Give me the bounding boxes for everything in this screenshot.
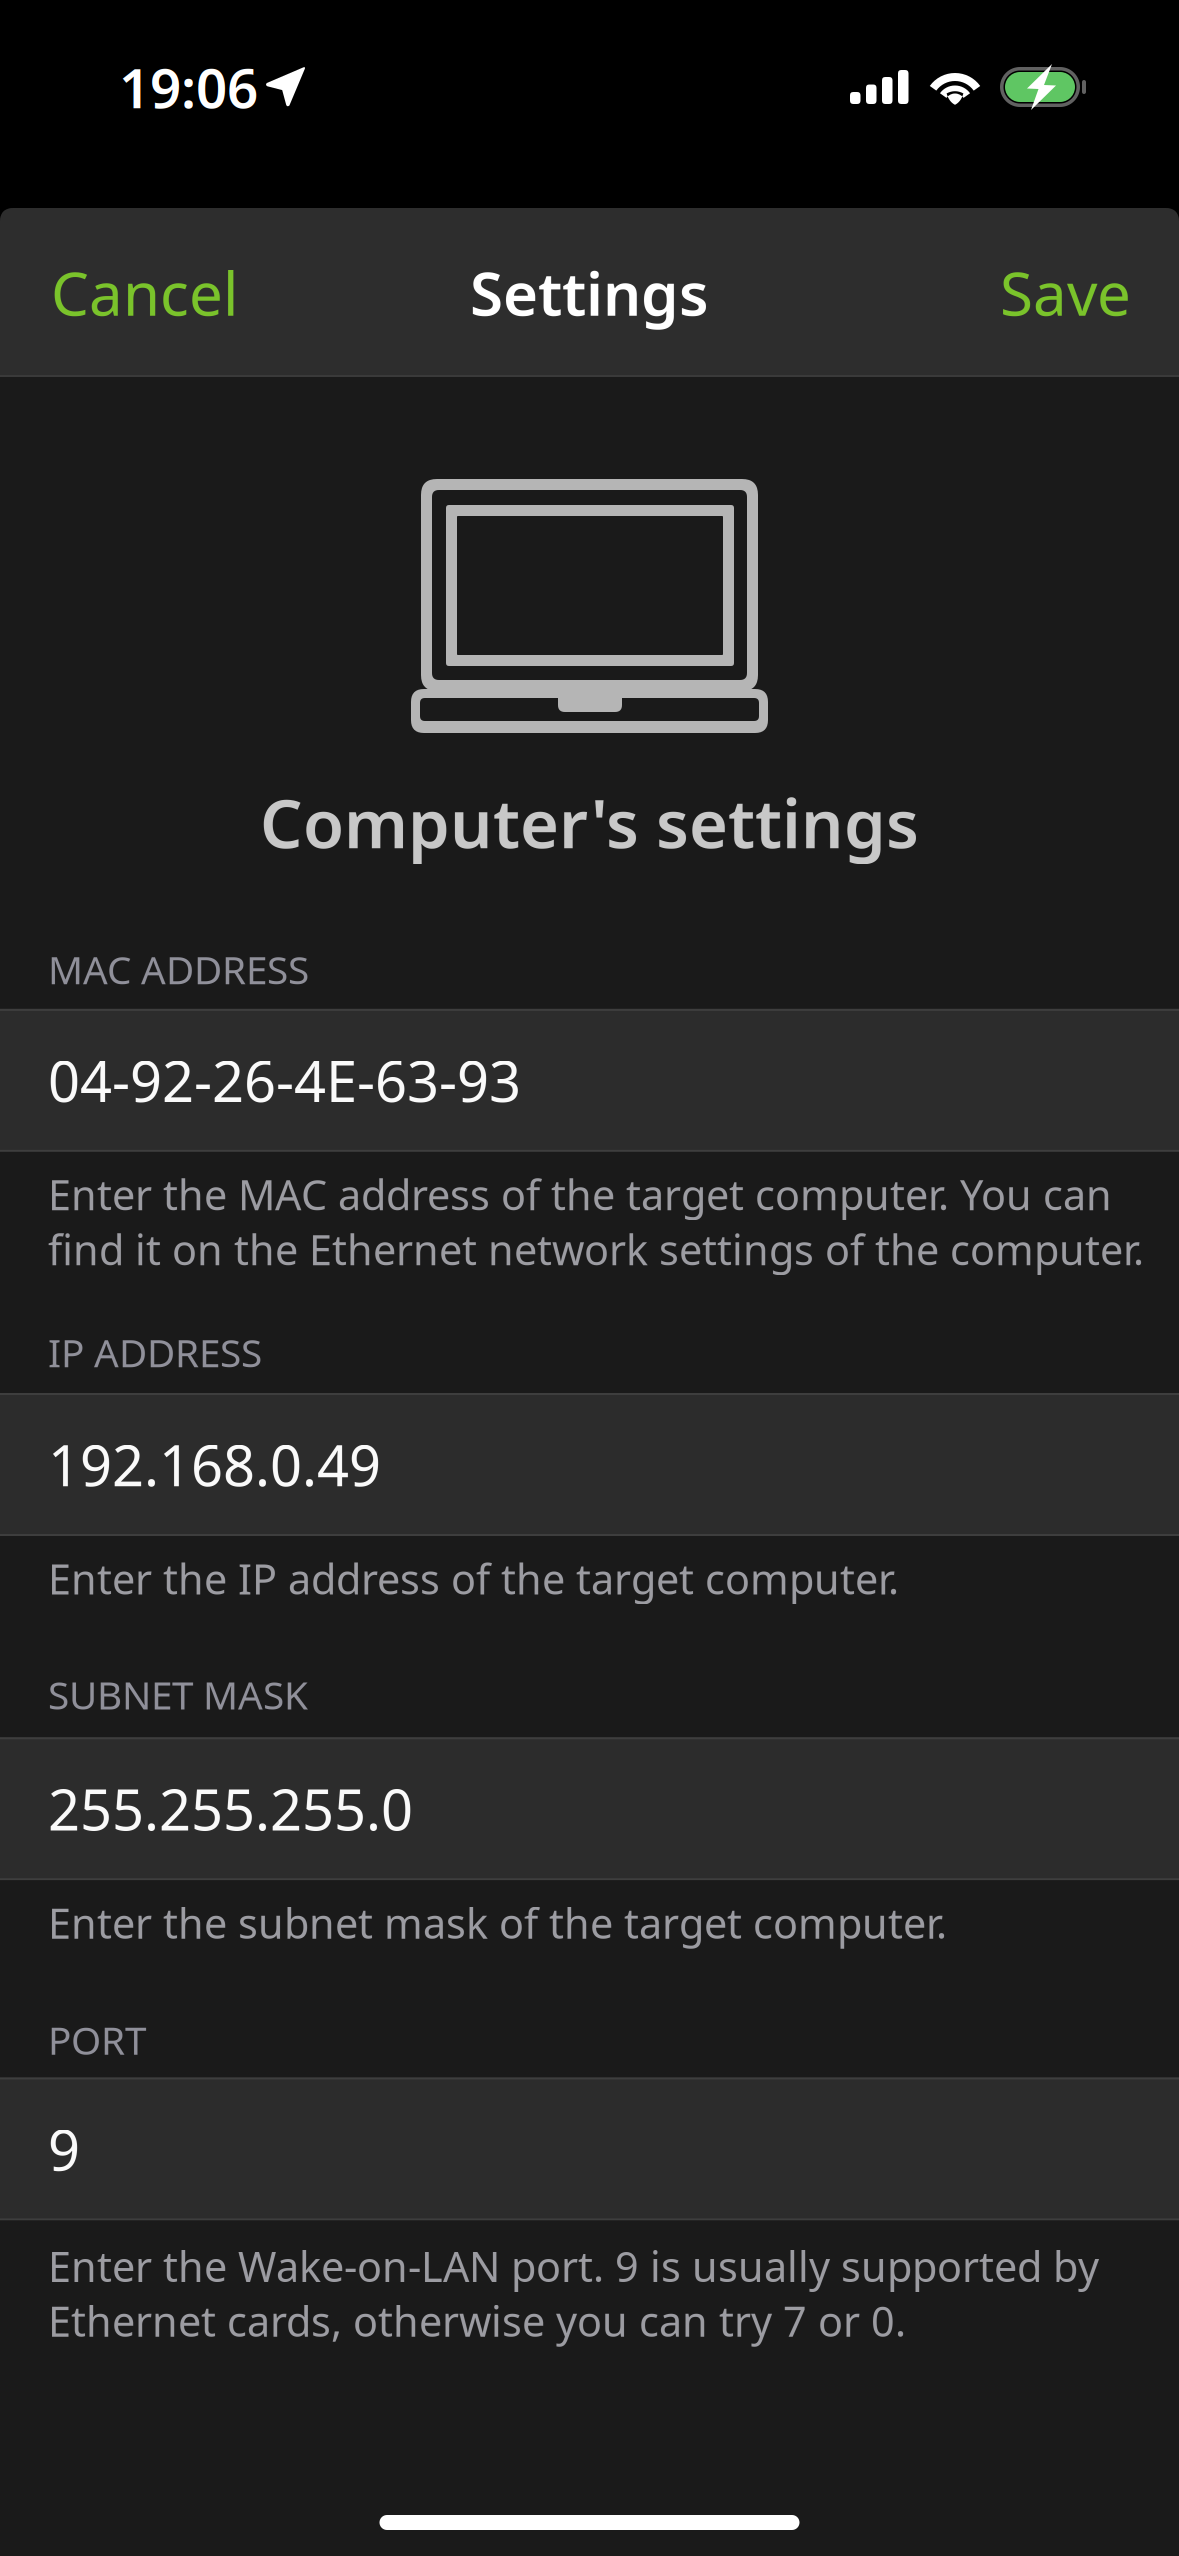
staticText: 9 (48, 2112, 80, 2186)
staticText: Settings (470, 253, 709, 332)
staticText: Computer's settings (260, 778, 919, 866)
button[interactable]: 04-92-26-4E-63-93 (0, 1009, 1179, 1152)
staticText: Enter the MAC address of the target comp… (48, 1167, 1144, 1277)
staticText: 19:06 (119, 51, 258, 123)
staticText: Save (1000, 253, 1131, 332)
staticText: 255.255.255.0 (48, 1772, 413, 1846)
staticText: Enter the IP address of the target compu… (48, 1551, 899, 1606)
staticText: Enter the subnet mask of the target comp… (48, 1895, 947, 1950)
button[interactable]: 192.168.0.49 (0, 1393, 1179, 1536)
staticText: IP ADDRESS (48, 1327, 262, 1378)
staticText: MAC ADDRESS (48, 943, 309, 995)
button[interactable]: Cancel (0, 208, 262, 377)
staticText: SUBNET MASK (48, 1669, 308, 1720)
staticText: 192.168.0.49 (48, 1427, 381, 1502)
staticText: 04-92-26-4E-63-93 (48, 1043, 521, 1118)
button[interactable]: 9 (0, 2077, 1179, 2220)
staticText: Cancel (51, 253, 238, 332)
staticText: Enter the Wake-on-LAN port. 9 is usually… (48, 2238, 1099, 2348)
button[interactable]: Save (976, 208, 1179, 377)
button[interactable]: 255.255.255.0 (0, 1737, 1179, 1880)
staticText: PORT (48, 2014, 146, 2065)
